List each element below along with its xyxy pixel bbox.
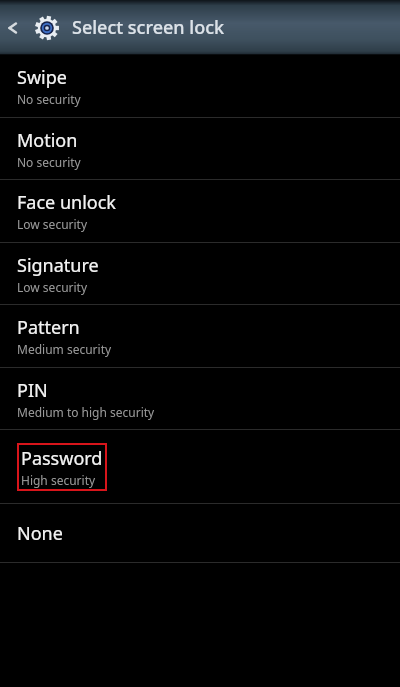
staticText: Swipe (17, 65, 67, 90)
staticText: Medium security (17, 341, 112, 357)
staticText: Password (21, 446, 103, 471)
staticText: PIN (17, 378, 48, 403)
staticText: Low security (17, 216, 88, 232)
staticText: Face unlock (17, 190, 116, 215)
staticText: Motion (17, 128, 78, 153)
staticText: Pattern (17, 315, 80, 340)
button[interactable]: Password (0, 430, 400, 503)
button[interactable]: Face unlock (0, 180, 400, 242)
button[interactable]: Pattern (0, 305, 400, 367)
staticText: Low security (17, 279, 88, 295)
button[interactable]: Motion (0, 118, 400, 179)
staticText: No security (17, 91, 81, 107)
staticText: High security (21, 472, 96, 488)
staticText: None (17, 521, 63, 546)
button[interactable]: Swipe (0, 55, 400, 117)
button[interactable]: PIN (0, 368, 400, 429)
staticText: Signature (17, 253, 99, 278)
button[interactable]: None (0, 504, 400, 562)
button[interactable]: Signature (0, 243, 400, 304)
staticText: Medium to high security (17, 404, 155, 420)
staticText: Select screen lock (72, 15, 225, 40)
staticText: No security (17, 154, 81, 170)
button[interactable]: Back (0, 0, 28, 55)
